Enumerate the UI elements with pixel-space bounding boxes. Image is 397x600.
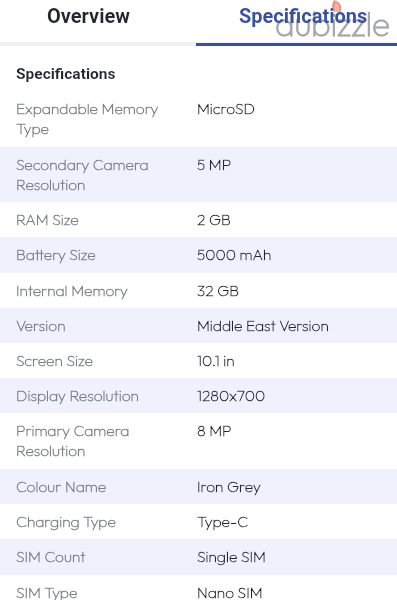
button[interactable]: Secondary Camera Resolution	[0, 147, 397, 202]
staticText: 2 GB	[197, 209, 231, 229]
staticText: Nano SIM	[197, 582, 263, 600]
button[interactable]: SIM Type	[0, 575, 397, 600]
staticText: Overview	[47, 4, 131, 27]
staticText: Iron Grey	[197, 476, 261, 496]
button[interactable]: Internal Memory	[0, 273, 397, 308]
staticText: 5000 mAh	[197, 244, 272, 264]
staticText: 1280x700	[197, 385, 266, 405]
staticText: dubizzle	[275, 3, 390, 45]
button[interactable]: Display Resolution	[0, 378, 397, 413]
staticText: Single SIM	[197, 546, 266, 566]
staticText: Specifications	[16, 65, 116, 83]
staticText: 5 MP	[197, 154, 232, 174]
staticText: Colour Name	[16, 476, 191, 496]
button[interactable]: SIM Count	[0, 539, 397, 575]
staticText: 32 GB	[197, 280, 239, 300]
staticText: Expandable Memory Type	[16, 98, 191, 138]
staticText: Display Resolution	[16, 385, 191, 405]
staticText: Middle East Version	[197, 315, 329, 335]
staticText: Secondary Camera Resolution	[16, 154, 191, 194]
staticText: SIM Count	[16, 546, 191, 566]
button[interactable]: Battery Size	[0, 237, 397, 273]
staticText: 10.1 in	[197, 350, 235, 370]
staticText: Version	[16, 315, 191, 335]
button[interactable]: Overview	[0, 0, 196, 36]
staticText: MicroSD	[197, 98, 256, 118]
staticText: Internal Memory	[16, 280, 191, 300]
staticText: Charging Type	[16, 511, 191, 531]
staticText: RAM Size	[16, 209, 191, 229]
staticText: Battery Size	[16, 244, 191, 264]
button[interactable]: Charging Type	[0, 504, 397, 539]
button[interactable]: Specifications	[196, 0, 397, 36]
button[interactable]: Expandable Memory Type	[0, 91, 397, 147]
staticText: Specifications	[239, 4, 368, 27]
staticText: 8 MP	[197, 420, 232, 440]
staticText: Primary Camera Resolution	[16, 420, 191, 460]
staticText: Screen Size	[16, 350, 191, 370]
button[interactable]: Version	[0, 308, 397, 343]
button[interactable]: Colour Name	[0, 469, 397, 504]
staticText: SIM Type	[16, 582, 191, 600]
button[interactable]: RAM Size	[0, 202, 397, 237]
button[interactable]: Primary Camera Resolution	[0, 413, 397, 469]
staticText: Type-C	[197, 511, 249, 531]
button[interactable]: Screen Size	[0, 343, 397, 378]
